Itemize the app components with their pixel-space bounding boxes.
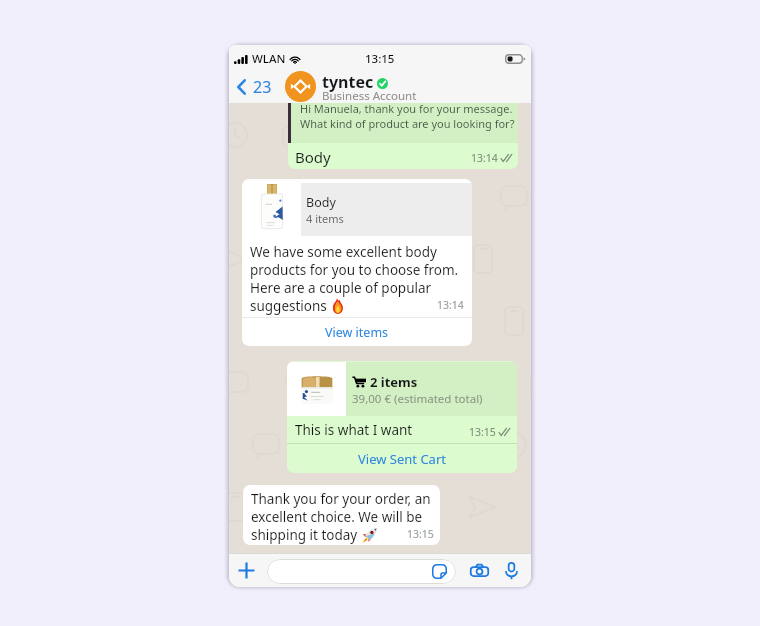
button[interactable]: Camera (467, 560, 492, 582)
staticText: 23 (253, 76, 272, 98)
button[interactable]: Thank you for your order, an (243, 485, 440, 545)
staticText: Business Account (322, 88, 417, 104)
staticText: Body (306, 194, 336, 211)
button[interactable]: Back (233, 70, 277, 103)
staticText: Body (295, 147, 331, 167)
staticText: 13:15 (469, 425, 496, 439)
staticText: 39,00 € (estimated total) (352, 391, 483, 407)
button[interactable]: tyntec profile (285, 71, 316, 102)
staticText: 4 items (306, 211, 344, 226)
button[interactable]: View Sent Cart (287, 444, 517, 473)
button[interactable]: View items (242, 318, 472, 346)
staticText: 2 items (370, 373, 418, 391)
button[interactable]: tyntec (322, 70, 417, 103)
button[interactable]: 2 items (287, 361, 517, 473)
staticText: tyntec (322, 71, 374, 93)
button[interactable]: Type a message (267, 559, 456, 584)
button[interactable]: Voice message (499, 559, 523, 583)
staticText: 13:15 (407, 527, 434, 541)
staticText: WLAN (252, 51, 286, 67)
staticText: We have some excellent body (250, 243, 437, 261)
staticText: excellent choice. We will be (251, 508, 423, 526)
staticText: Hi Manuela, thank you for your message. (300, 101, 513, 116)
button[interactable]: Body (242, 179, 472, 346)
button[interactable]: Attach (234, 558, 259, 583)
staticText: suggestions (250, 297, 327, 315)
staticText: View items (325, 324, 389, 341)
button[interactable]: Hi Manuela, thank you for your message. (288, 89, 518, 169)
staticText: 13:15 (365, 51, 395, 67)
staticText: 13:14 (471, 151, 498, 165)
staticText: View Sent Cart (358, 450, 446, 468)
staticText: shipping it today (251, 526, 358, 544)
staticText: Here are a couple of popular (250, 279, 432, 297)
staticText: This is what I want (295, 421, 413, 439)
staticText: Thank you for your order, an (251, 490, 431, 508)
staticText: 13:14 (437, 298, 464, 312)
staticText: What kind of product are you looking for… (300, 116, 515, 131)
staticText: products for you to choose from. (250, 261, 459, 279)
